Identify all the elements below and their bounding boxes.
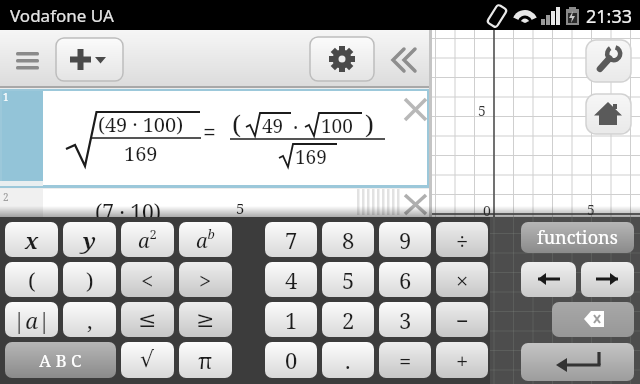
button[interactable] bbox=[10, 44, 46, 76]
staticText: 100 bbox=[321, 113, 353, 139]
staticText: 6 bbox=[399, 265, 412, 295]
staticText: ( bbox=[28, 265, 36, 295]
button[interactable]: × bbox=[436, 262, 488, 297]
staticText: 49 bbox=[262, 113, 284, 139]
button[interactable]: − bbox=[436, 302, 488, 337]
button[interactable]: , bbox=[63, 302, 116, 337]
staticText: (7 · 10) bbox=[95, 198, 161, 227]
button[interactable]: ab bbox=[179, 222, 232, 257]
staticText: π bbox=[198, 345, 213, 375]
staticText: 3 bbox=[399, 305, 412, 335]
button[interactable]: ) bbox=[63, 262, 116, 297]
button[interactable]: 1 bbox=[265, 302, 317, 337]
staticText: 169 bbox=[295, 144, 327, 170]
staticText: ÷ bbox=[456, 225, 469, 255]
staticText: 2 bbox=[3, 190, 9, 204]
button[interactable]: π bbox=[179, 342, 232, 378]
staticText: 5 bbox=[587, 200, 595, 219]
staticText: ≥ bbox=[196, 307, 215, 333]
staticText: + bbox=[456, 345, 469, 375]
button[interactable]: a2 bbox=[121, 222, 174, 257]
button[interactable]: ≥ bbox=[179, 302, 232, 337]
staticText: 9 bbox=[399, 225, 412, 255]
staticText: ≤ bbox=[138, 307, 157, 333]
staticText: 5 bbox=[342, 265, 355, 295]
button[interactable] bbox=[521, 262, 576, 297]
staticText: − bbox=[456, 305, 469, 335]
staticText: A B C bbox=[39, 349, 82, 372]
staticText: 1 bbox=[3, 90, 9, 104]
staticText: x bbox=[25, 225, 39, 255]
staticText: 0 bbox=[483, 201, 491, 220]
button[interactable]: functions bbox=[521, 222, 634, 253]
button[interactable] bbox=[399, 93, 432, 126]
staticText: 7 bbox=[285, 225, 298, 255]
button[interactable]: A B C bbox=[5, 342, 116, 378]
button[interactable] bbox=[521, 343, 634, 381]
button[interactable]: 0 bbox=[265, 342, 317, 378]
staticText: Vodafone UA bbox=[10, 4, 114, 27]
staticText: = bbox=[399, 345, 412, 375]
button[interactable] bbox=[0, 89, 429, 188]
button[interactable]: < bbox=[121, 262, 174, 297]
button[interactable]: |a| bbox=[5, 302, 58, 337]
button[interactable]: y bbox=[63, 222, 116, 257]
staticText: 0 bbox=[285, 345, 298, 375]
button[interactable] bbox=[388, 44, 420, 76]
staticText: = bbox=[203, 116, 216, 147]
button[interactable]: > bbox=[179, 262, 232, 297]
staticText: . bbox=[345, 345, 351, 375]
button[interactable]: 4 bbox=[265, 262, 317, 297]
staticText: > bbox=[199, 265, 212, 295]
staticText: functions bbox=[537, 225, 618, 250]
button[interactable] bbox=[56, 38, 123, 81]
staticText: · bbox=[293, 113, 299, 142]
button[interactable]: 8 bbox=[322, 222, 374, 257]
staticText: 8 bbox=[342, 225, 355, 255]
button[interactable]: 6 bbox=[379, 262, 431, 297]
staticText: √ bbox=[140, 347, 155, 373]
staticText: < bbox=[141, 265, 154, 295]
button[interactable]: √ bbox=[121, 342, 174, 378]
staticText: , bbox=[87, 305, 93, 335]
staticText: |a| bbox=[13, 305, 51, 335]
button[interactable]: ÷ bbox=[436, 222, 488, 257]
button[interactable]: 5 bbox=[322, 262, 374, 297]
staticText: 1 bbox=[285, 305, 298, 335]
button[interactable] bbox=[586, 40, 631, 82]
button[interactable]: 2 bbox=[322, 302, 374, 337]
staticText: ( bbox=[232, 106, 241, 141]
button[interactable] bbox=[310, 37, 374, 81]
staticText: ) bbox=[365, 106, 374, 141]
staticText: 5 bbox=[236, 198, 245, 218]
button[interactable]: . bbox=[322, 342, 374, 378]
button[interactable]: ( bbox=[5, 262, 58, 297]
staticText: ab bbox=[196, 225, 215, 254]
staticText: a2 bbox=[138, 225, 157, 254]
staticText: 2 bbox=[342, 305, 355, 335]
staticText: (49 · 100) bbox=[98, 111, 184, 138]
staticText: 5 bbox=[478, 101, 486, 120]
button[interactable]: 3 bbox=[379, 302, 431, 337]
staticText: × bbox=[456, 265, 469, 295]
staticText: 21:33 bbox=[586, 4, 633, 29]
button[interactable]: 9 bbox=[379, 222, 431, 257]
button[interactable]: x bbox=[5, 222, 58, 257]
staticText: ) bbox=[86, 265, 94, 295]
button[interactable]: + bbox=[436, 342, 488, 378]
button[interactable]: 7 bbox=[265, 222, 317, 257]
staticText: y bbox=[83, 225, 96, 255]
button[interactable] bbox=[552, 302, 634, 337]
button[interactable] bbox=[586, 94, 631, 134]
button[interactable]: = bbox=[379, 342, 431, 378]
button[interactable]: ≤ bbox=[121, 302, 174, 337]
button[interactable] bbox=[581, 262, 634, 297]
staticText: 4 bbox=[285, 265, 298, 295]
staticText: 169 bbox=[124, 140, 158, 167]
